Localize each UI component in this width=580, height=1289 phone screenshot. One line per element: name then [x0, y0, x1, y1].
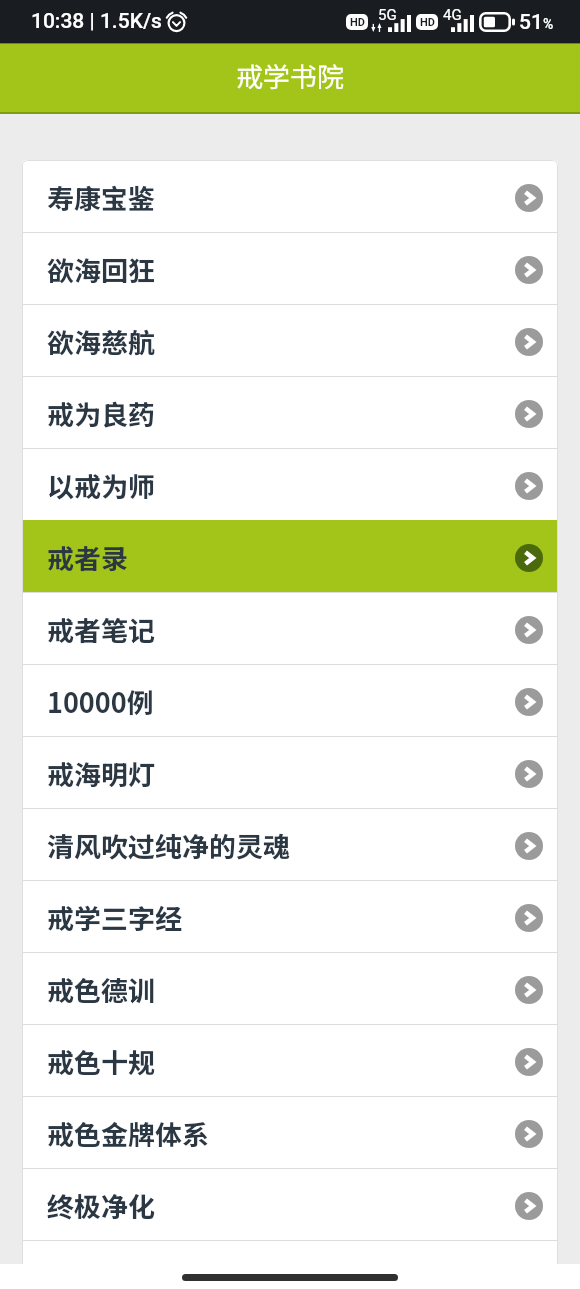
- button[interactable]: 戒为良药: [22, 376, 558, 448]
- staticText: 10000例: [47, 682, 154, 721]
- staticText: 4G: [443, 6, 462, 24]
- staticText: 欲海回狂: [47, 250, 155, 289]
- staticText: 寿康宝鉴: [47, 178, 155, 217]
- button[interactable]: 戒色德训: [22, 952, 558, 1024]
- button[interactable]: 戒者笔记: [22, 592, 558, 664]
- other: Open: [515, 760, 543, 788]
- staticText: 戒学三字经: [47, 898, 182, 937]
- other: Open: [515, 544, 543, 572]
- other: Open: [515, 256, 543, 284]
- staticText: 以戒为师: [47, 466, 155, 505]
- button[interactable]: 戒色金牌体系: [22, 1096, 558, 1168]
- other: Open: [515, 688, 543, 716]
- staticText: 戒海明灯: [47, 754, 155, 793]
- staticText: 戒者笔记: [47, 610, 155, 649]
- staticText: 戒色金牌体系: [47, 1114, 209, 1153]
- other: Open: [515, 832, 543, 860]
- staticText: 10:38 | 1.5K/s: [31, 9, 162, 34]
- staticText: 戒学书院: [236, 56, 344, 95]
- staticText: 清风吹过纯净的灵魂: [47, 826, 290, 865]
- button[interactable]: 欲海回狂: [22, 232, 558, 304]
- button[interactable]: 戒色养生: [22, 1240, 558, 1264]
- staticText: 戒为良药: [47, 394, 155, 433]
- other: Open: [515, 328, 543, 356]
- staticText: %: [543, 16, 554, 32]
- button[interactable]: 终极净化: [22, 1168, 558, 1240]
- other: Open: [515, 184, 543, 212]
- button[interactable]: 戒学三字经: [22, 880, 558, 952]
- staticText: 终极净化: [47, 1186, 155, 1225]
- other: Open: [515, 472, 543, 500]
- button[interactable]: 清风吹过纯净的灵魂: [22, 808, 558, 880]
- button[interactable]: 戒海明灯: [22, 736, 558, 808]
- staticText: 欲海慈航: [47, 322, 155, 361]
- other: Open: [515, 904, 543, 932]
- other: Open: [515, 400, 543, 428]
- button[interactable]: 以戒为师: [22, 448, 558, 520]
- other: Open: [515, 1192, 543, 1220]
- button[interactable]: 戒色十规: [22, 1024, 558, 1096]
- staticText: 5G: [378, 6, 397, 24]
- staticText: 戒色十规: [47, 1042, 155, 1081]
- staticText: 51: [519, 10, 543, 35]
- staticText: 戒者录: [47, 538, 128, 577]
- other: Open: [515, 1048, 543, 1076]
- staticText: HD: [420, 16, 435, 29]
- other: Open: [515, 1120, 543, 1148]
- other: Open: [515, 616, 543, 644]
- button[interactable]: 寿康宝鉴: [22, 160, 558, 232]
- button[interactable]: 10000例: [22, 664, 558, 736]
- other: Alarm: [165, 10, 188, 33]
- staticText: 戒色德训: [47, 970, 155, 1009]
- staticText: HD: [350, 16, 365, 29]
- button[interactable]: 欲海慈航: [22, 304, 558, 376]
- other: Open: [515, 976, 543, 1004]
- button[interactable]: 戒者录: [22, 520, 558, 592]
